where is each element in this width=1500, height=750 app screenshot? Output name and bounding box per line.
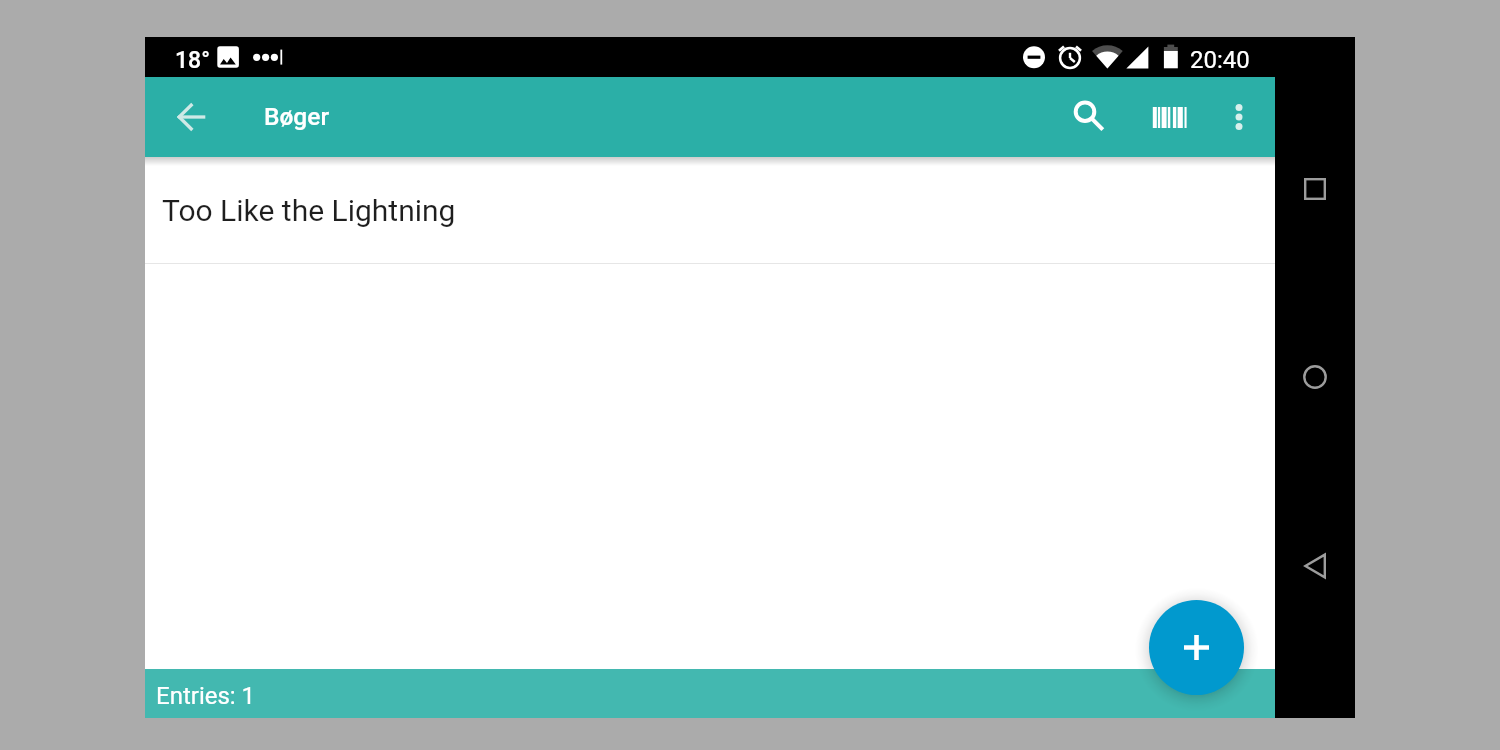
button[interactable]: Recents bbox=[1292, 166, 1338, 212]
staticText: Entries: 1 bbox=[156, 682, 256, 710]
button[interactable]: Home bbox=[1292, 354, 1338, 400]
staticText: 20:40 bbox=[1190, 46, 1250, 74]
staticText: Too Like the Lightning bbox=[162, 193, 456, 228]
button[interactable]: Too Like the Lightning bbox=[145, 157, 1275, 263]
button[interactable]: More options bbox=[1215, 93, 1263, 141]
staticText: Bøger bbox=[264, 102, 330, 131]
button[interactable]: Search bbox=[1057, 86, 1115, 144]
button[interactable]: Scan barcode bbox=[1141, 91, 1197, 143]
button[interactable]: Back bbox=[1292, 543, 1338, 589]
button[interactable]: Add bbox=[1149, 600, 1244, 695]
button[interactable]: Back bbox=[168, 93, 216, 141]
staticText: 18° bbox=[175, 47, 210, 74]
